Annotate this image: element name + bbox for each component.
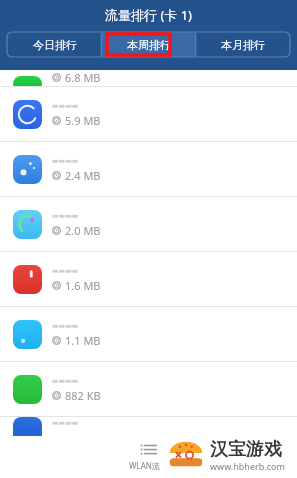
button[interactable]: ▬▬▬▬ (0, 197, 297, 251)
staticText: 流量排行 (卡 1) (105, 6, 192, 24)
button[interactable]: ▬▬▬▬ (0, 417, 297, 443)
staticText: ▬▬▬▬ (52, 419, 79, 427)
staticText: ▬▬▬▬ (52, 377, 79, 385)
button[interactable]: 本周排行 (102, 32, 196, 57)
button[interactable]: ▬▬▬▬ (0, 307, 297, 361)
button[interactable]: ▬▬▬▬ (0, 142, 297, 196)
button[interactable]: ▬▬▬▬ (0, 87, 297, 141)
staticText: 2.0 MB (65, 223, 101, 238)
button[interactable]: WLAN流量 (116, 444, 180, 471)
staticText: WLAN流量 (129, 460, 168, 471)
staticText: 6.8 MB (65, 70, 101, 85)
staticText: www.hbherb.com (210, 460, 285, 472)
staticText: ▬▬▬▬ (52, 212, 79, 220)
staticText: 882 KB (65, 388, 101, 403)
staticText: 本周排行 (127, 38, 171, 52)
staticText: 1.1 MB (65, 333, 101, 348)
button[interactable]: ▬▬▬▬ (0, 362, 297, 416)
staticText: 今日排行 (33, 38, 77, 52)
staticText: 1.6 MB (65, 278, 101, 293)
button[interactable]: 今日排行 (7, 32, 102, 57)
staticText: 汉宝游戏 (210, 438, 282, 461)
staticText: ▬▬▬▬ (52, 267, 79, 275)
staticText: 5.9 MB (65, 113, 101, 128)
staticText: 本月排行 (221, 38, 265, 52)
button[interactable]: 本月排行 (196, 32, 290, 57)
staticText: ▬▬▬▬ (52, 322, 79, 330)
staticText: ▬▬▬▬ (52, 102, 79, 110)
staticText: 2.4 MB (65, 168, 101, 183)
staticText: ▬▬▬▬ (52, 157, 79, 165)
button[interactable]: ▬▬▬▬ (0, 252, 297, 306)
